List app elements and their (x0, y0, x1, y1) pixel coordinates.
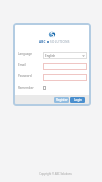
staticText: ABC (39, 40, 46, 44)
button[interactable] (43, 63, 87, 70)
staticText: English (45, 54, 56, 58)
button[interactable]: English (43, 52, 87, 59)
button[interactable]: Register (54, 97, 69, 103)
staticText: Remember (18, 86, 34, 90)
staticText: Login (74, 98, 82, 102)
staticText: SOLUTIONS (50, 40, 70, 44)
staticText: Copyright © ABC Solutions (39, 172, 72, 176)
staticText: Language (18, 52, 33, 56)
button[interactable]: Remember me (43, 86, 46, 90)
staticText: Register (56, 98, 68, 102)
staticText: Password (18, 74, 32, 78)
staticText: Email (18, 63, 26, 67)
button[interactable] (43, 74, 87, 81)
button[interactable]: Login (70, 97, 85, 103)
